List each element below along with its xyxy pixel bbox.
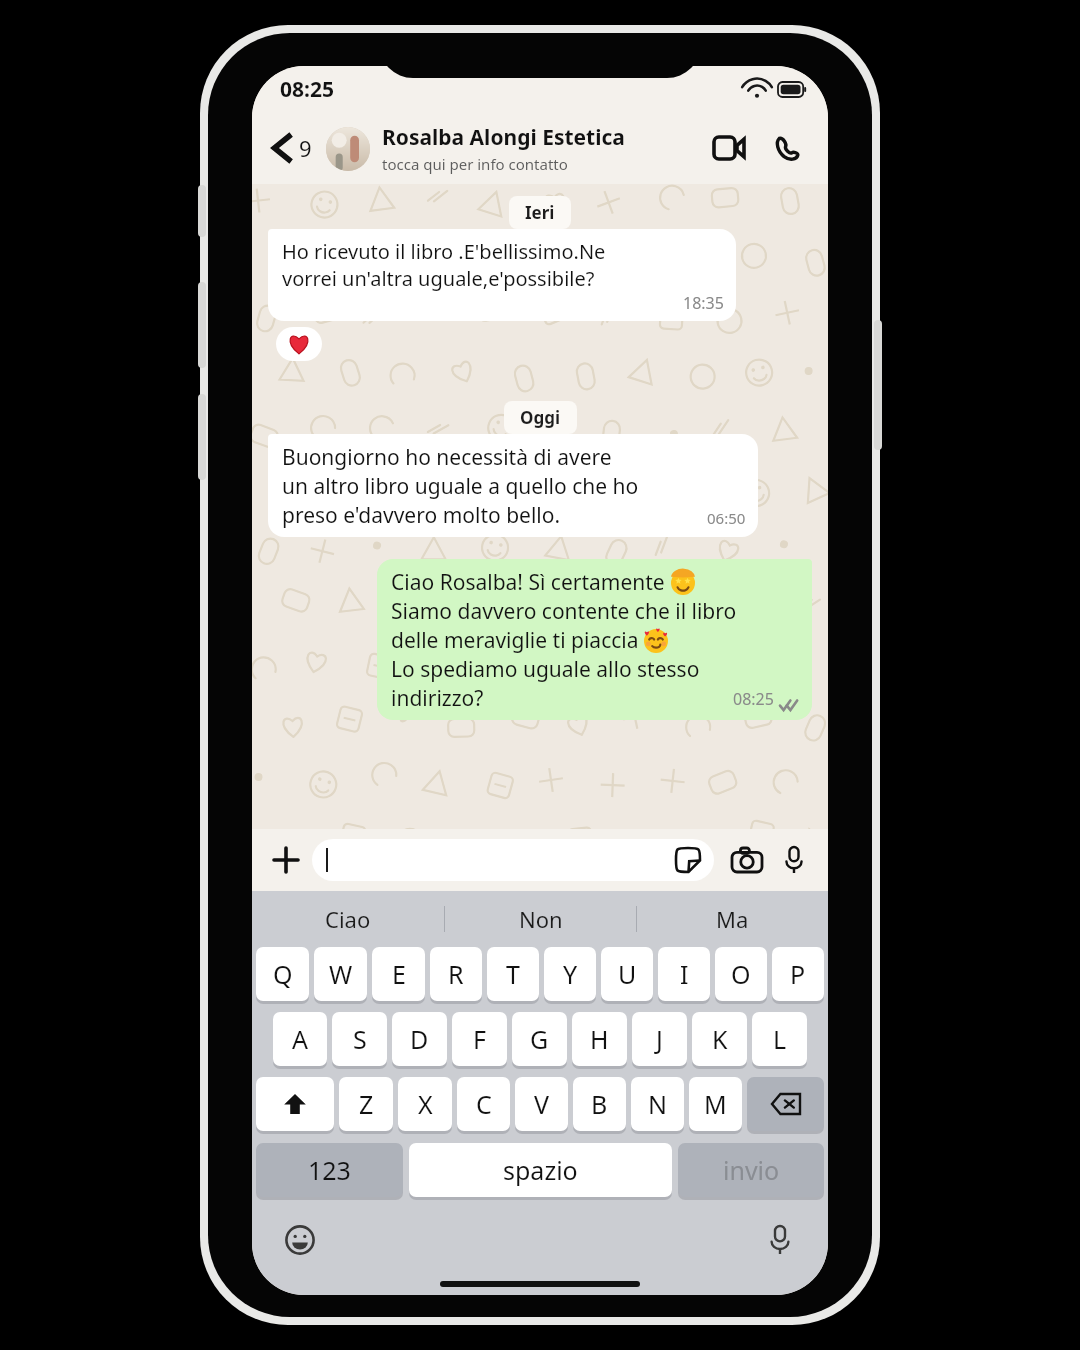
- button[interactable]: I: [658, 947, 710, 1001]
- staticText: N: [648, 1087, 668, 1121]
- staticText: K: [712, 1022, 728, 1056]
- staticText: Ciao Rosalba! Sì certamente: [391, 568, 671, 597]
- staticText: 9: [299, 133, 312, 163]
- button[interactable]: Dictation: [758, 1218, 802, 1262]
- button[interactable]: O: [715, 947, 767, 1001]
- staticText: Ho ricevuto il libro .E'bellissimo.Ne: [282, 238, 606, 265]
- staticText: S: [353, 1022, 367, 1056]
- button[interactable]: Ciao Rosalba! Sì certamente: [377, 559, 812, 720]
- button[interactable]: Z: [339, 1077, 393, 1131]
- staticText: Ieri: [525, 201, 555, 224]
- button[interactable]: Camera: [726, 839, 768, 881]
- button[interactable]: P: [772, 947, 824, 1001]
- button[interactable]: Voice call: [766, 127, 808, 169]
- staticText: E: [392, 957, 406, 991]
- button[interactable]: Ho ricevuto il libro .E'bellissimo.Ne: [268, 229, 736, 321]
- button[interactable]: Shift: [256, 1077, 334, 1131]
- button[interactable]: R: [430, 947, 482, 1001]
- staticText: un altro libro uguale a quello che ho: [282, 472, 639, 501]
- button[interactable]: Back: [268, 133, 316, 163]
- staticText: Y: [563, 957, 578, 991]
- staticText: Oggi: [520, 406, 561, 429]
- staticText: Siamo davvero contente che il libro: [391, 597, 737, 626]
- staticText: Q: [273, 957, 293, 991]
- button[interactable]: Y: [544, 947, 596, 1001]
- staticText: O: [731, 957, 751, 991]
- staticText: invio: [723, 1153, 780, 1187]
- button[interactable]: Contact photo: [326, 123, 708, 174]
- button[interactable]: T: [487, 947, 539, 1001]
- button[interactable]: B: [573, 1077, 626, 1131]
- button[interactable]: invio: [678, 1143, 824, 1197]
- button[interactable]: Contact photo: [326, 127, 370, 171]
- staticText: Rosalba Alongi Estetica: [382, 123, 625, 152]
- staticText: B: [591, 1087, 608, 1121]
- staticText: 06:50: [707, 508, 746, 528]
- staticText: 08:25: [280, 75, 334, 104]
- staticText: Ma: [716, 904, 749, 934]
- button[interactable]: G: [512, 1012, 567, 1066]
- staticText: C: [476, 1087, 492, 1121]
- staticText: Lo spediamo uguale allo stesso: [391, 655, 700, 684]
- staticText: I: [680, 957, 689, 991]
- staticText: H: [590, 1022, 609, 1056]
- button[interactable]: Backspace: [747, 1077, 824, 1131]
- other: Back: [272, 134, 292, 162]
- button[interactable]: S: [332, 1012, 387, 1066]
- button[interactable]: U: [601, 947, 653, 1001]
- button[interactable]: Voice message: [774, 840, 814, 880]
- staticText: F: [473, 1022, 486, 1056]
- button[interactable]: C: [457, 1077, 510, 1131]
- staticText: L: [773, 1022, 787, 1056]
- button[interactable]: Video call: [708, 127, 750, 169]
- staticText: Ciao: [325, 904, 371, 934]
- staticText: 123: [308, 1153, 351, 1187]
- other: Sticker: [676, 848, 700, 872]
- button[interactable]: 123: [256, 1143, 403, 1197]
- button[interactable]: Attach: [266, 840, 306, 880]
- staticText: U: [618, 957, 637, 991]
- button[interactable]: K: [692, 1012, 747, 1066]
- button[interactable]: spazio: [409, 1143, 672, 1197]
- button[interactable]: W: [314, 947, 367, 1001]
- button[interactable]: Emoji: [278, 1218, 322, 1262]
- button[interactable]: H: [572, 1012, 627, 1066]
- staticText: 18:35: [683, 292, 724, 314]
- button[interactable]: X: [398, 1077, 452, 1131]
- staticText: J: [656, 1022, 663, 1056]
- button[interactable]: N: [631, 1077, 684, 1131]
- staticText: A: [292, 1022, 308, 1056]
- button[interactable]: Ciao: [252, 891, 444, 947]
- staticText: M: [704, 1087, 727, 1121]
- button[interactable]: F: [452, 1012, 507, 1066]
- staticText: R: [448, 957, 464, 991]
- button[interactable]: E: [372, 947, 425, 1001]
- button[interactable]: D: [392, 1012, 447, 1066]
- staticText: G: [530, 1022, 549, 1056]
- staticText: X: [418, 1087, 433, 1121]
- button[interactable]: L: [752, 1012, 807, 1066]
- button[interactable]: Buongiorno ho necessità di avere: [268, 434, 758, 537]
- staticText: Non: [519, 904, 563, 934]
- staticText: Buongiorno ho necessità di avere: [282, 443, 612, 472]
- staticText: V: [534, 1087, 550, 1121]
- staticText: spazio: [503, 1153, 578, 1187]
- button[interactable]: Sticker: [312, 839, 714, 881]
- staticText: vorrei un'altra uguale,e'possibile?: [282, 265, 595, 292]
- button[interactable]: Reaction heart: [276, 327, 322, 361]
- button[interactable]: A: [273, 1012, 327, 1066]
- button[interactable]: Q: [256, 947, 309, 1001]
- staticText: T: [506, 957, 520, 991]
- button[interactable]: M: [689, 1077, 742, 1131]
- staticText: delle meraviglie ti piaccia: [391, 626, 644, 655]
- button[interactable]: V: [515, 1077, 568, 1131]
- staticText: P: [790, 957, 806, 991]
- staticText: D: [410, 1022, 429, 1056]
- button[interactable]: Non: [445, 891, 636, 947]
- staticText: 08:25: [733, 688, 774, 710]
- staticText: preso e'davvero molto bello.: [282, 501, 561, 530]
- staticText: Z: [359, 1087, 374, 1121]
- button[interactable]: J: [632, 1012, 687, 1066]
- button[interactable]: Ma: [637, 891, 828, 947]
- staticText: W: [329, 957, 353, 991]
